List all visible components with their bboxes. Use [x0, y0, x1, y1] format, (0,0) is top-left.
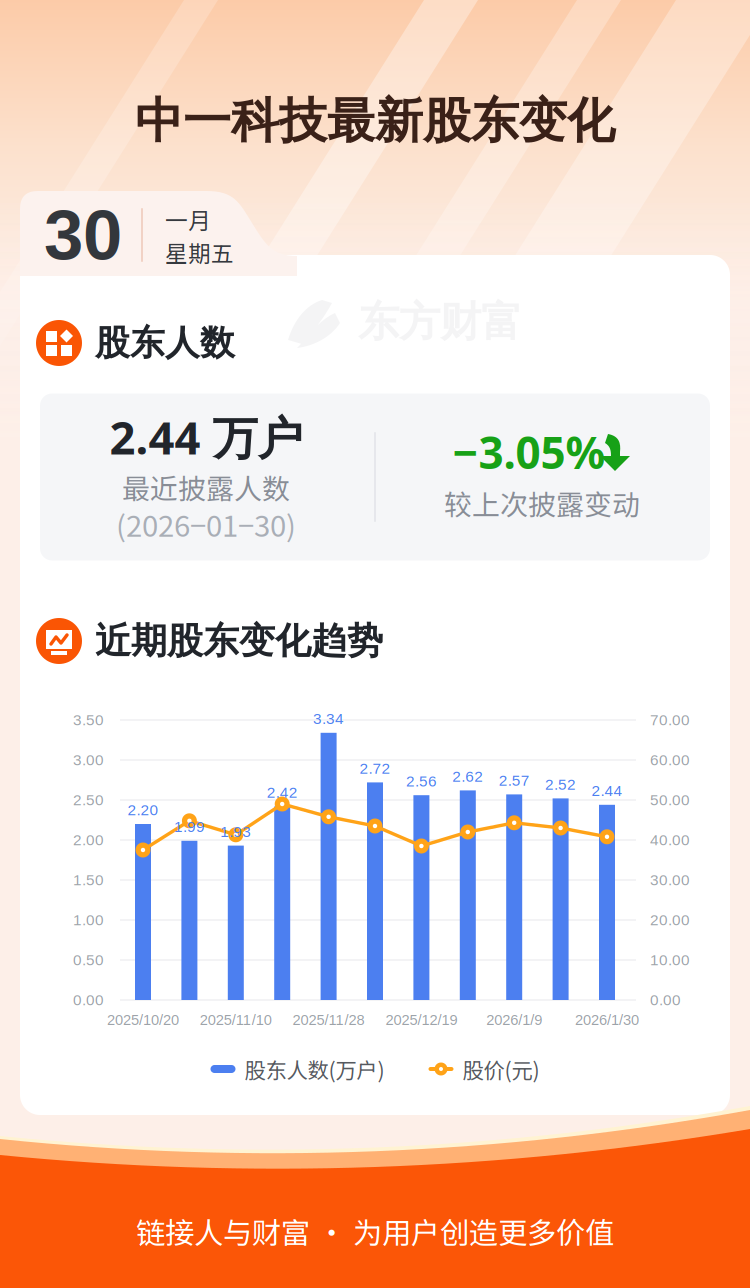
- staticText: 30: [44, 195, 122, 274]
- staticText: 10.00: [650, 951, 690, 968]
- staticText: 40.00: [650, 831, 690, 848]
- staticText: 2.20: [127, 801, 158, 818]
- staticText: 2.52: [545, 776, 576, 793]
- staticText: 2025/10/20: [107, 1012, 179, 1028]
- staticText: 1.93: [220, 823, 251, 840]
- staticText: 近期股东变化趋势: [95, 618, 383, 664]
- staticText: 3.00: [73, 751, 104, 768]
- staticText: 20.00: [650, 911, 690, 928]
- staticText: 星期五: [165, 236, 234, 268]
- staticText: 30.00: [650, 871, 690, 888]
- staticText: 较上次披露变动: [444, 483, 640, 523]
- staticText: 股价(元): [462, 1054, 539, 1084]
- staticText: 2025/12/19: [385, 1012, 457, 1028]
- staticText: 1.99: [174, 818, 205, 835]
- staticText: 50.00: [650, 791, 690, 808]
- staticText: 最近披露人数: [122, 467, 290, 507]
- staticText: 2.42: [267, 784, 298, 801]
- staticText: 2.00: [73, 831, 104, 848]
- staticText: 2025/11/28: [293, 1012, 365, 1028]
- staticText: 股东人数(万户): [244, 1054, 384, 1084]
- staticText: 2.50: [73, 791, 104, 808]
- staticText: 一月: [165, 203, 211, 235]
- staticText: 1.00: [73, 911, 104, 928]
- staticText: (2026−01−30): [116, 503, 296, 545]
- staticText: 3.50: [73, 711, 104, 728]
- staticText: 2.56: [406, 773, 437, 790]
- staticText: 2.44 万户: [109, 406, 302, 468]
- staticText: 东方财富: [358, 296, 522, 348]
- staticText: 股东人数: [95, 321, 235, 365]
- staticText: 2026/1/30: [575, 1012, 639, 1028]
- staticText: 1.50: [73, 871, 104, 888]
- staticText: 2026/1/9: [486, 1012, 542, 1028]
- staticText: 2.62: [452, 768, 483, 785]
- staticText: 0.50: [73, 951, 104, 968]
- staticText: 2.57: [499, 772, 530, 789]
- button[interactable]: 股东人数: [36, 318, 296, 368]
- staticText: 2025/11/10: [200, 1012, 272, 1028]
- staticText: 2.44: [591, 782, 622, 799]
- staticText: 60.00: [650, 751, 690, 768]
- staticText: 中一科技最新股东变化: [135, 91, 615, 151]
- staticText: −3.05%: [452, 422, 605, 482]
- staticText: 链接人与财富 · 为用户创造更多价值: [136, 1210, 614, 1252]
- staticText: 70.00: [650, 711, 690, 728]
- button[interactable]: 近期股东变化趋势: [36, 616, 436, 666]
- staticText: 2.72: [359, 760, 390, 777]
- staticText: 3.34: [313, 710, 344, 727]
- staticText: 0.00: [73, 991, 104, 1008]
- staticText: 0.00: [650, 991, 681, 1008]
